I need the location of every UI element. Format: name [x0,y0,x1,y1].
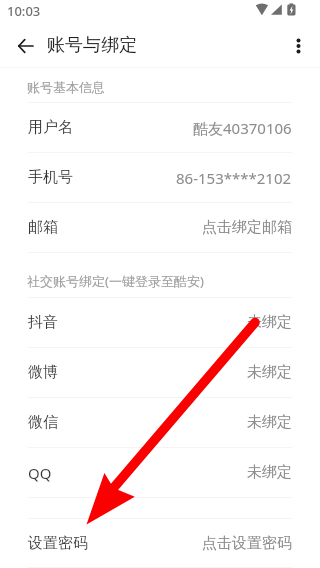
button[interactable]: 手机号 [0,153,320,202]
button[interactable]: 抖音 [0,298,320,347]
staticText: 邮箱 [28,218,58,237]
staticText: 账号基本信息 [27,79,105,95]
button[interactable]: 用户名 [0,103,320,152]
staticText: 未绑定 [247,363,292,382]
staticText: 86-153****2102 [176,168,292,188]
staticText: 点击设置密码 [202,534,292,553]
staticText: QQ [28,463,52,483]
button[interactable]: Back [11,32,39,60]
staticText: 未绑定 [247,463,292,482]
button[interactable]: 邮箱 [0,203,320,252]
staticText: 社交账号绑定(一键登录至酷安) [27,272,204,290]
staticText: 酷友40370106 [193,118,292,138]
staticText: 账号与绑定 [47,34,137,57]
staticText: 点击绑定邮箱 [202,218,292,237]
staticText: 未绑定 [247,413,292,432]
staticText: 10:03 [7,2,41,20]
button[interactable]: 微博 [0,348,320,397]
staticText: 手机号 [28,168,73,187]
staticText: 设置密码 [28,534,88,553]
staticText: 微博 [28,363,58,382]
button[interactable]: More options [284,32,312,60]
staticText: 抖音 [28,313,58,332]
button[interactable]: QQ [0,448,320,497]
staticText: 微信 [28,413,58,432]
button[interactable]: 微信 [0,398,320,447]
button[interactable]: 设置密码 [0,519,320,567]
staticText: 未绑定 [247,313,292,332]
staticText: 用户名 [28,118,73,137]
